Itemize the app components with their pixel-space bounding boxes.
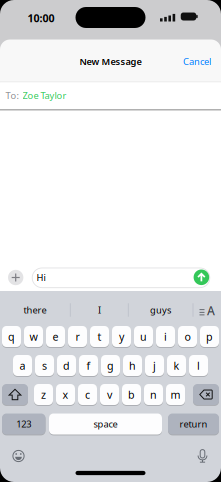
- staticText: 10:00: [27, 11, 54, 25]
- staticText: b: [128, 387, 135, 402]
- button[interactable]: p: [200, 326, 219, 347]
- button[interactable]: w: [24, 326, 43, 347]
- staticText: s: [42, 358, 47, 373]
- button[interactable]: return: [168, 413, 219, 434]
- button[interactable]: z: [34, 384, 53, 405]
- button[interactable]: s: [35, 355, 54, 376]
- button[interactable]: [2, 384, 28, 405]
- staticText: t: [97, 329, 101, 344]
- button[interactable]: a: [13, 355, 32, 376]
- button[interactable]: there: [2, 299, 68, 321]
- staticText: Cancel: [183, 55, 211, 68]
- staticText: k: [173, 358, 179, 373]
- button[interactable]: n: [144, 384, 163, 405]
- button[interactable]: j: [145, 355, 164, 376]
- staticText: guys: [150, 304, 171, 316]
- staticText: m: [170, 387, 180, 402]
- button[interactable]: y: [112, 326, 131, 347]
- staticText: d: [63, 358, 70, 373]
- staticText: 123: [16, 418, 31, 430]
- staticText: i: [164, 329, 167, 344]
- button[interactable]: q: [2, 326, 21, 347]
- button[interactable]: b: [122, 384, 141, 405]
- button[interactable]: A: [203, 302, 211, 318]
- button[interactable]: x: [56, 384, 75, 405]
- button[interactable]: v: [100, 384, 119, 405]
- button[interactable]: c: [78, 384, 97, 405]
- staticText: a: [19, 358, 25, 373]
- staticText: j: [153, 358, 156, 373]
- button[interactable]: e: [46, 326, 65, 347]
- staticText: n: [150, 387, 157, 402]
- button[interactable]: [194, 269, 209, 285]
- button[interactable]: guys: [132, 299, 188, 321]
- staticText: f: [86, 358, 90, 373]
- button[interactable]: o: [178, 326, 197, 347]
- staticText: Zoe Taylor: [22, 89, 66, 102]
- button[interactable]: I: [74, 299, 124, 321]
- staticText: u: [140, 329, 147, 344]
- button[interactable]: Cancel: [183, 55, 211, 68]
- staticText: c: [85, 387, 90, 402]
- staticText: e: [52, 329, 58, 344]
- button[interactable]: d: [57, 355, 76, 376]
- staticText: w: [29, 329, 37, 344]
- staticText: y: [119, 329, 124, 344]
- staticText: Hi: [36, 271, 45, 284]
- staticText: there: [23, 304, 46, 316]
- button[interactable]: f: [79, 355, 98, 376]
- button[interactable]: [193, 384, 219, 405]
- button[interactable]: g: [101, 355, 120, 376]
- button[interactable]: l: [189, 355, 208, 376]
- staticText: v: [107, 387, 112, 402]
- staticText: x: [62, 387, 68, 402]
- staticText: o: [184, 329, 190, 344]
- staticText: New Message: [79, 55, 141, 68]
- staticText: I: [98, 304, 101, 316]
- button[interactable]: 123: [2, 413, 45, 434]
- button[interactable]: k: [167, 355, 186, 376]
- staticText: h: [129, 358, 136, 373]
- staticText: p: [206, 329, 213, 344]
- button[interactable]: space: [49, 413, 162, 434]
- staticText: z: [41, 387, 46, 402]
- button[interactable]: u: [134, 326, 153, 347]
- button[interactable]: m: [166, 384, 185, 405]
- button[interactable]: To:: [5, 89, 66, 102]
- button[interactable]: t: [90, 326, 109, 347]
- button[interactable]: h: [123, 355, 142, 376]
- staticText: q: [8, 329, 15, 344]
- staticText: l: [197, 358, 200, 373]
- button[interactable]: [196, 449, 209, 463]
- staticText: A: [207, 302, 215, 318]
- button[interactable]: [8, 270, 23, 285]
- staticText: To:: [5, 89, 19, 102]
- staticText: return: [179, 418, 207, 430]
- button[interactable]: r: [68, 326, 87, 347]
- staticText: g: [107, 358, 114, 373]
- staticText: r: [75, 329, 79, 344]
- staticText: space: [93, 418, 117, 430]
- button[interactable]: [12, 450, 25, 462]
- button[interactable]: i: [156, 326, 175, 347]
